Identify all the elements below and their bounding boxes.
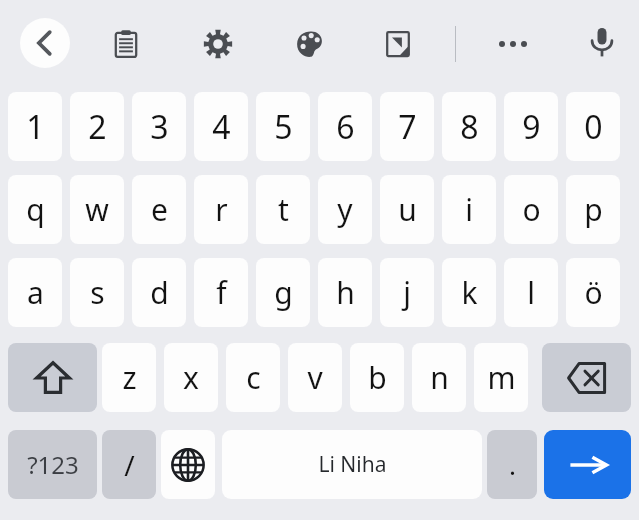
staticText: 9 — [522, 105, 541, 149]
button[interactable]: Voice input — [580, 20, 624, 64]
staticText: z — [122, 357, 137, 398]
button[interactable]: Clipboard — [104, 22, 148, 66]
staticText: f — [216, 272, 227, 313]
staticText: k — [461, 272, 478, 313]
button[interactable]: ö — [566, 258, 620, 327]
button[interactable]: h — [318, 258, 372, 327]
staticText: g — [274, 272, 293, 313]
staticText: v — [307, 357, 323, 398]
button[interactable]: 2 — [70, 92, 124, 161]
button[interactable]: l — [504, 258, 558, 327]
button[interactable]: Themes — [288, 22, 332, 66]
staticText: h — [336, 272, 355, 313]
staticText: 1 — [26, 105, 45, 149]
staticText: 8 — [460, 105, 479, 149]
button[interactable]: j — [380, 258, 434, 327]
button[interactable]: i — [442, 175, 496, 244]
staticText: 2 — [88, 105, 107, 149]
button[interactable]: g — [256, 258, 310, 327]
staticText: t — [278, 189, 289, 230]
staticText: 6 — [336, 105, 355, 149]
staticText: / — [124, 446, 135, 484]
button[interactable]: v — [288, 343, 342, 412]
staticText: d — [150, 272, 169, 313]
staticText: e — [151, 189, 168, 230]
button[interactable]: b — [350, 343, 404, 412]
button[interactable]: s — [70, 258, 124, 327]
staticText: p — [584, 189, 603, 230]
button[interactable]: Settings — [196, 22, 240, 66]
button[interactable]: t — [256, 175, 310, 244]
staticText: . — [509, 447, 516, 482]
staticText: r — [215, 189, 228, 230]
button[interactable]: y — [318, 175, 372, 244]
staticText: c — [246, 357, 261, 398]
staticText: 5 — [274, 105, 293, 149]
staticText: a — [27, 272, 44, 313]
button[interactable]: m — [474, 343, 528, 412]
staticText: n — [430, 357, 449, 398]
staticText: j — [403, 272, 411, 313]
staticText: l — [527, 272, 535, 313]
staticText: Li Niha — [318, 450, 387, 479]
button[interactable]: . — [487, 430, 537, 499]
button[interactable]: z — [102, 343, 156, 412]
button[interactable]: ?123 — [8, 430, 97, 499]
button[interactable]: Enter — [544, 430, 631, 499]
button[interactable]: p — [566, 175, 620, 244]
button[interactable]: / — [102, 430, 156, 499]
button[interactable]: More options — [491, 22, 535, 66]
button[interactable]: x — [164, 343, 218, 412]
staticText: o — [522, 189, 541, 230]
staticText: x — [183, 357, 199, 398]
button[interactable]: 6 — [318, 92, 372, 161]
button[interactable]: q — [8, 175, 62, 244]
button[interactable]: 3 — [132, 92, 186, 161]
button[interactable]: c — [226, 343, 280, 412]
staticText: ö — [584, 272, 603, 313]
staticText: 7 — [398, 105, 417, 149]
button[interactable]: 9 — [504, 92, 558, 161]
staticText: 0 — [584, 105, 603, 149]
button[interactable]: d — [132, 258, 186, 327]
staticText: 4 — [212, 105, 231, 149]
staticText: 3 — [150, 105, 169, 149]
button[interactable]: o — [504, 175, 558, 244]
button[interactable]: Back — [20, 18, 70, 68]
button[interactable]: 0 — [566, 92, 620, 161]
button[interactable]: w — [70, 175, 124, 244]
button[interactable]: Shift — [8, 343, 97, 412]
staticText: u — [398, 189, 417, 230]
button[interactable]: 8 — [442, 92, 496, 161]
button[interactable]: 7 — [380, 92, 434, 161]
button[interactable]: Change language — [161, 430, 215, 499]
button[interactable]: n — [412, 343, 466, 412]
button[interactable]: Stickers — [376, 22, 420, 66]
button[interactable]: f — [194, 258, 248, 327]
button[interactable]: u — [380, 175, 434, 244]
staticText: ?123 — [27, 448, 79, 481]
button[interactable]: Backspace — [542, 343, 631, 412]
button[interactable]: e — [132, 175, 186, 244]
staticText: i — [465, 189, 473, 230]
button[interactable]: a — [8, 258, 62, 327]
button[interactable]: 4 — [194, 92, 248, 161]
staticText: q — [26, 189, 45, 230]
button[interactable]: r — [194, 175, 248, 244]
staticText: m — [487, 357, 516, 398]
button[interactable]: Li Niha — [222, 430, 482, 499]
staticText: s — [90, 272, 105, 313]
button[interactable]: 1 — [8, 92, 62, 161]
staticText: w — [85, 189, 109, 230]
button[interactable]: k — [442, 258, 496, 327]
button[interactable]: 5 — [256, 92, 310, 161]
staticText: y — [337, 189, 353, 230]
staticText: b — [368, 357, 387, 398]
